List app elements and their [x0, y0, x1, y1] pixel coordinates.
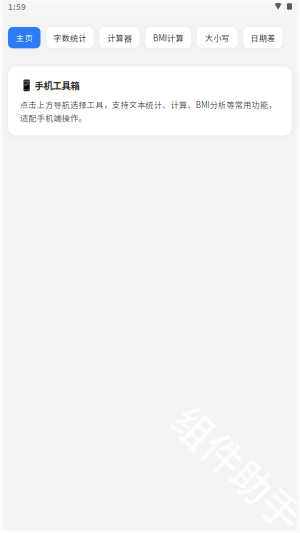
staticText: 主页: [16, 32, 32, 43]
button[interactable]: BMI计算: [145, 27, 191, 48]
staticText: 📱: [20, 79, 33, 91]
button[interactable]: 字数统计: [46, 27, 93, 48]
staticText: 计算器: [107, 32, 132, 43]
staticText: 手机工具箱: [34, 78, 79, 92]
staticText: 组件助手: [159, 438, 300, 496]
staticText: 大小写: [205, 32, 229, 43]
staticText: 点击上方导航选择工具，支持文本统计、计算、BMI分析等常用功能，适配手机端操作。: [20, 99, 276, 123]
staticText: 1:59: [8, 1, 26, 12]
staticText: BMI计算: [153, 32, 183, 43]
staticText: 日期差: [250, 32, 275, 43]
button[interactable]: 大小写: [197, 27, 237, 48]
button[interactable]: 计算器: [99, 27, 139, 48]
button[interactable]: 日期差: [243, 27, 282, 48]
button[interactable]: 主页: [8, 27, 40, 48]
staticText: 字数统计: [53, 32, 86, 43]
